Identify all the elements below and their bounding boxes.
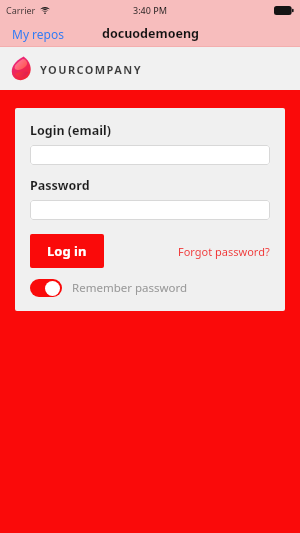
button[interactable]: Login (email) input — [30, 145, 270, 165]
staticText: Carrier — [6, 4, 36, 16]
button[interactable]: My repos — [0, 22, 76, 46]
button[interactable]: Forgot password? — [178, 238, 270, 265]
button[interactable]: Log in — [30, 234, 104, 268]
button[interactable]: Password input — [30, 200, 270, 220]
button[interactable]: Remember password toggle, on — [30, 279, 62, 297]
staticText: My repos — [12, 26, 64, 42]
staticText: Password — [30, 177, 90, 194]
staticText: 3:40 PM — [133, 4, 167, 16]
button[interactable]: Remember password toggle, on — [30, 279, 188, 297]
staticText: Log in — [47, 242, 87, 260]
staticText: YOURCOMPANY — [40, 62, 142, 77]
staticText: docuodemoeng — [102, 25, 199, 42]
staticText: Login (email) — [30, 122, 111, 139]
staticText: Remember password — [72, 280, 188, 296]
button[interactable]: YOURCOMPANY — [10, 56, 142, 82]
staticText: Forgot password? — [178, 244, 270, 259]
